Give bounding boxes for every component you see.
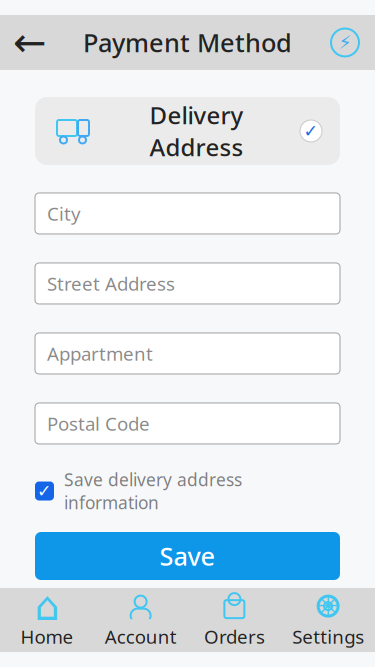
button[interactable]: ✳: [281, 588, 375, 652]
staticText: ⌂: [34, 583, 59, 629]
staticText: Settings: [292, 624, 364, 649]
staticText: ⚡︎: [338, 32, 351, 53]
button[interactable]: Save: [35, 532, 340, 580]
staticText: Postal Code: [47, 411, 150, 436]
button[interactable]: ⌂: [0, 588, 94, 652]
staticText: Delivery Address: [149, 99, 243, 163]
staticText: ✓: [303, 121, 318, 141]
staticText: ←: [13, 20, 47, 65]
button[interactable]: ✓: [35, 468, 340, 514]
button[interactable]: Account: [94, 588, 188, 652]
staticText: Orders: [204, 624, 265, 649]
staticText: City: [47, 201, 81, 226]
staticText: Street Address: [47, 271, 175, 296]
staticText: Save: [159, 539, 215, 573]
button[interactable]: Messages: [323, 20, 367, 64]
staticText: ✓: [37, 481, 52, 501]
staticText: Payment Method: [83, 26, 292, 59]
staticText: Account: [105, 624, 177, 649]
staticText: Appartment: [47, 341, 153, 366]
staticText: Home: [20, 624, 73, 649]
button[interactable]: Orders: [187, 588, 281, 652]
staticText: Save delivery address information: [64, 468, 242, 514]
button[interactable]: Delivery Address: [35, 97, 340, 165]
staticText: ✳: [316, 589, 341, 623]
button[interactable]: Back: [8, 20, 52, 64]
